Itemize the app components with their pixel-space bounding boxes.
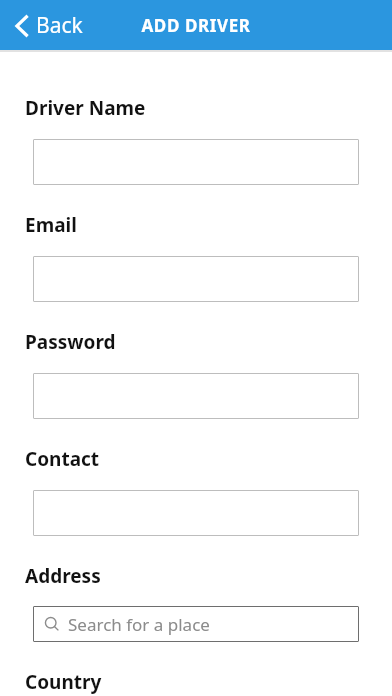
staticText: Country xyxy=(25,669,102,695)
button[interactable] xyxy=(33,256,359,302)
button[interactable] xyxy=(33,490,359,536)
staticText: Back xyxy=(36,11,83,40)
button[interactable] xyxy=(33,373,359,419)
staticText: Contact xyxy=(25,446,100,472)
staticText: ADD DRIVER xyxy=(141,14,251,37)
staticText: Driver Name xyxy=(25,95,146,121)
staticText: Address xyxy=(25,563,101,589)
button[interactable] xyxy=(33,139,359,185)
other: Search xyxy=(44,616,60,632)
button[interactable]: Search xyxy=(33,606,359,642)
staticText: Email xyxy=(25,212,77,238)
staticText: Password xyxy=(25,329,116,355)
staticText: Search for a place xyxy=(68,613,210,636)
button[interactable]: Back xyxy=(10,7,87,44)
